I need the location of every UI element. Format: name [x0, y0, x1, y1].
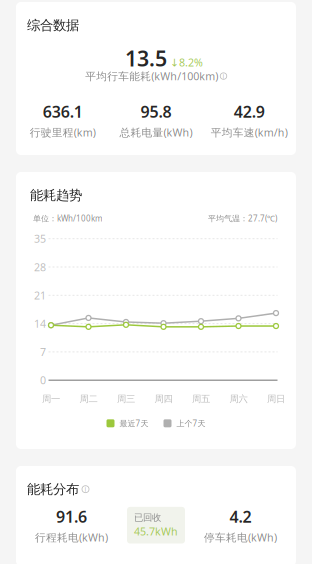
staticText: 14 [34, 316, 46, 331]
staticText: 周三 [117, 393, 135, 405]
staticText: 95.8 [140, 101, 171, 122]
staticText: 平均气温：27.7(℃) [208, 213, 277, 224]
staticText: ↓8.2% [170, 55, 203, 69]
staticText: 综合数据 [27, 17, 79, 33]
staticText: 35 [34, 232, 46, 246]
staticText: 最近7天 [119, 418, 148, 429]
staticText: 周日 [267, 393, 285, 405]
staticText: 7 [40, 345, 46, 359]
staticText: 行驶里程(km) [30, 125, 96, 139]
staticText: 21 [34, 288, 46, 302]
staticText: 平均车速(km/h) [211, 125, 288, 139]
staticText: 45.7kWh [134, 524, 178, 539]
staticText: 28 [34, 260, 46, 274]
staticText: 0 [40, 373, 46, 387]
staticText: 能耗趋势 [30, 187, 82, 203]
staticText: i [222, 72, 224, 81]
staticText: 636.1 [43, 101, 83, 122]
staticText: 已回收 [134, 512, 161, 523]
staticText: 周一 [42, 393, 60, 405]
staticText: 单位：kWh/100km [33, 213, 102, 224]
staticText: 91.6 [56, 506, 87, 527]
staticText: 停车耗电(kWh) [204, 530, 277, 544]
staticText: 周五 [192, 393, 210, 405]
staticText: 能耗分布 [27, 481, 79, 497]
staticText: 行程耗电(kWh) [35, 530, 108, 544]
staticText: 周四 [154, 393, 172, 405]
staticText: 总耗电量(kWh) [119, 125, 192, 139]
staticText: 周六 [229, 393, 247, 405]
staticText: 平均行车能耗(kWh/100km) [85, 69, 218, 83]
staticText: 42.9 [234, 101, 265, 122]
staticText: i [84, 485, 86, 494]
staticText: 13.5 [125, 44, 167, 72]
staticText: 4.2 [229, 506, 251, 527]
staticText: 周二 [79, 393, 97, 405]
staticText: 上个7天 [176, 418, 205, 429]
